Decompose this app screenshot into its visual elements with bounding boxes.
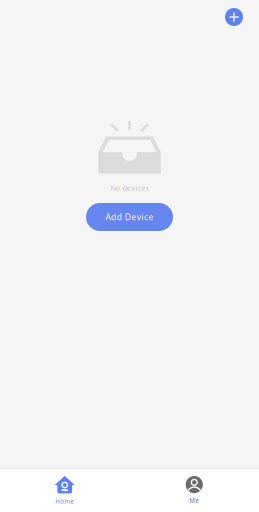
staticText: Add Device (105, 211, 153, 223)
button[interactable]: Home (0, 469, 129, 512)
button[interactable]: Me (129, 469, 259, 512)
staticText: No devices (110, 183, 148, 193)
staticText: Me (189, 496, 199, 505)
button[interactable]: Add device (217, 0, 251, 34)
staticText: Home (55, 497, 74, 506)
button[interactable]: Add Device (86, 203, 173, 231)
